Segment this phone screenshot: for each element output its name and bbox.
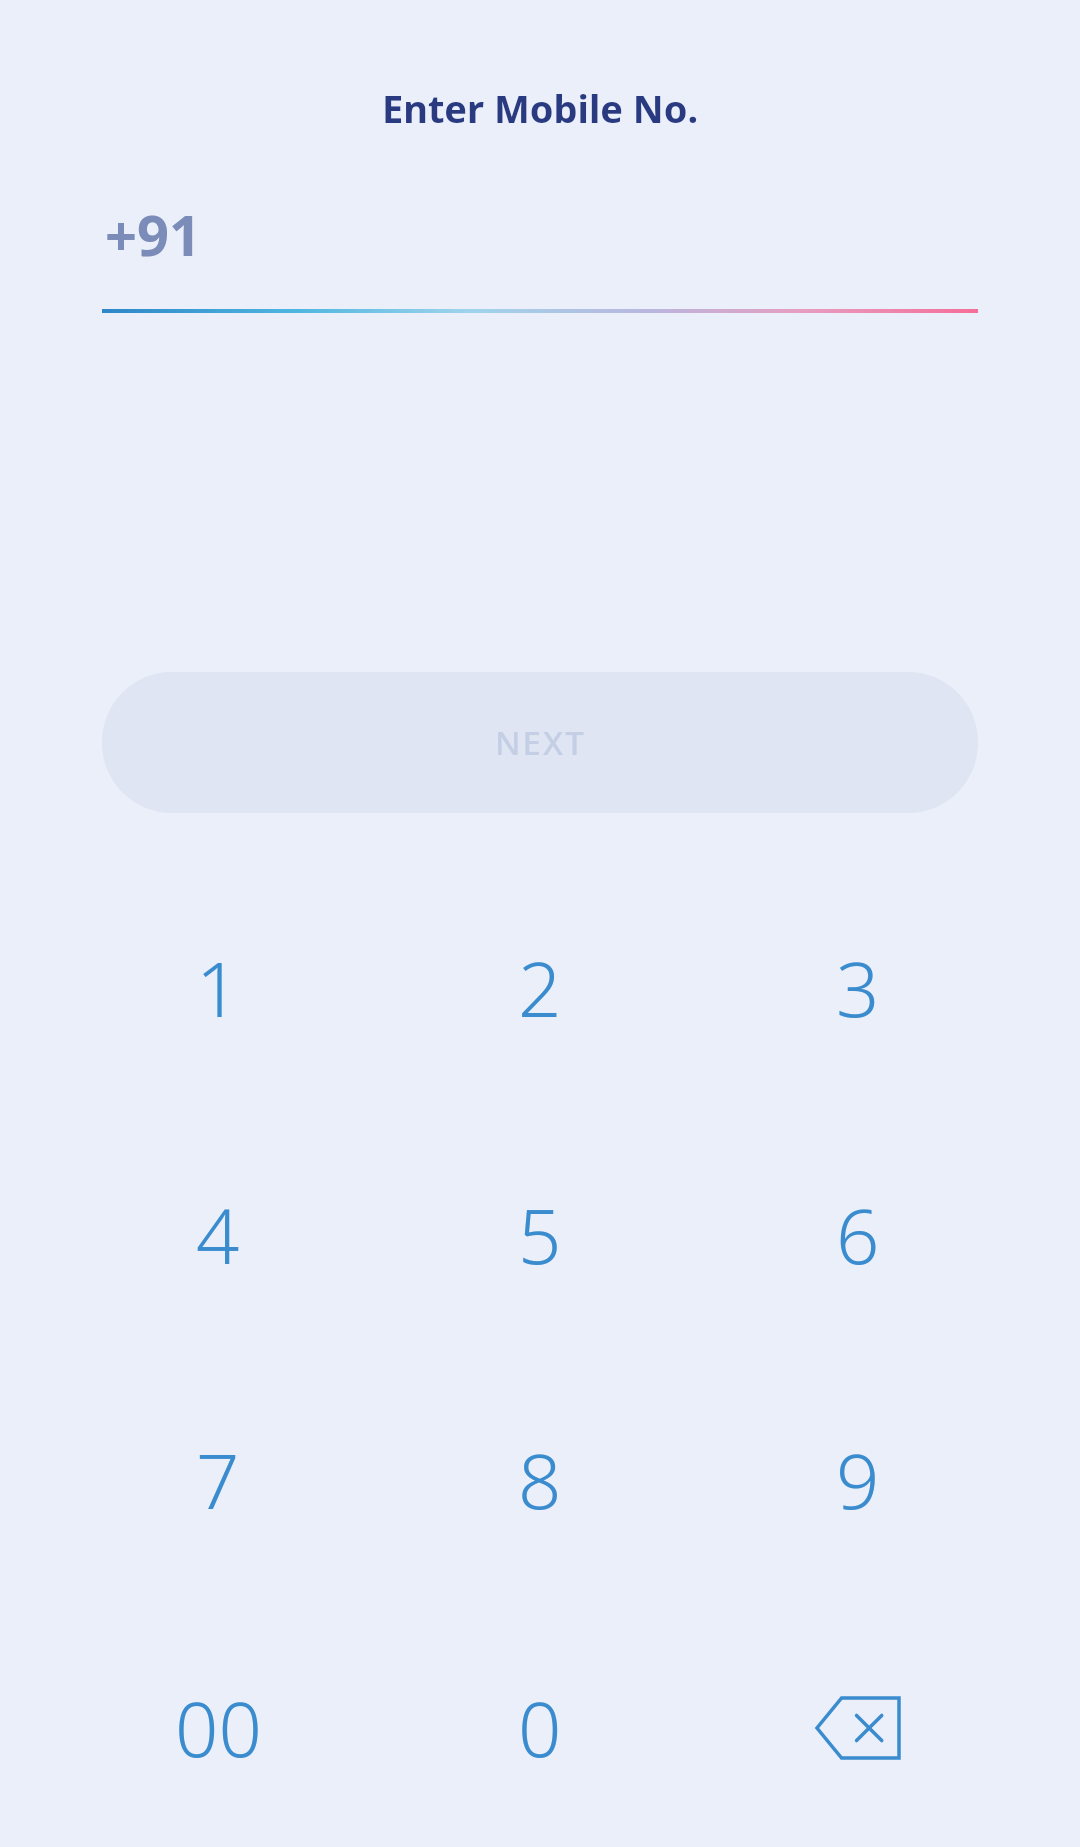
staticText: 6 (836, 1183, 880, 1287)
button[interactable]: 6 (708, 1120, 1008, 1350)
button[interactable]: +91 (103, 196, 204, 272)
button[interactable]: 2 (390, 873, 690, 1103)
staticText: Enter Mobile No. (0, 82, 1080, 134)
button[interactable]: 9 (708, 1365, 1008, 1595)
button[interactable]: 00 (68, 1613, 368, 1843)
staticText: NEXT (495, 720, 586, 765)
staticText: 0 (518, 1676, 562, 1780)
staticText: 7 (196, 1428, 240, 1532)
button[interactable]: 4 (68, 1120, 368, 1350)
staticText: 5 (518, 1183, 562, 1287)
staticText: 4 (196, 1183, 240, 1287)
button[interactable]: 5 (390, 1120, 690, 1350)
staticText: 9 (836, 1428, 880, 1532)
staticText: 2 (518, 936, 562, 1040)
staticText: 3 (836, 936, 880, 1040)
button[interactable]: 1 (68, 873, 368, 1103)
button[interactable]: Backspace (708, 1613, 1008, 1843)
button[interactable]: 0 (390, 1613, 690, 1843)
button[interactable]: 7 (68, 1365, 368, 1595)
button[interactable]: 3 (708, 873, 1008, 1103)
staticText: 8 (518, 1428, 562, 1532)
staticText: +91 (105, 196, 202, 272)
button[interactable]: 8 (390, 1365, 690, 1595)
staticText: 00 (175, 1676, 262, 1780)
staticText: 1 (196, 936, 240, 1040)
